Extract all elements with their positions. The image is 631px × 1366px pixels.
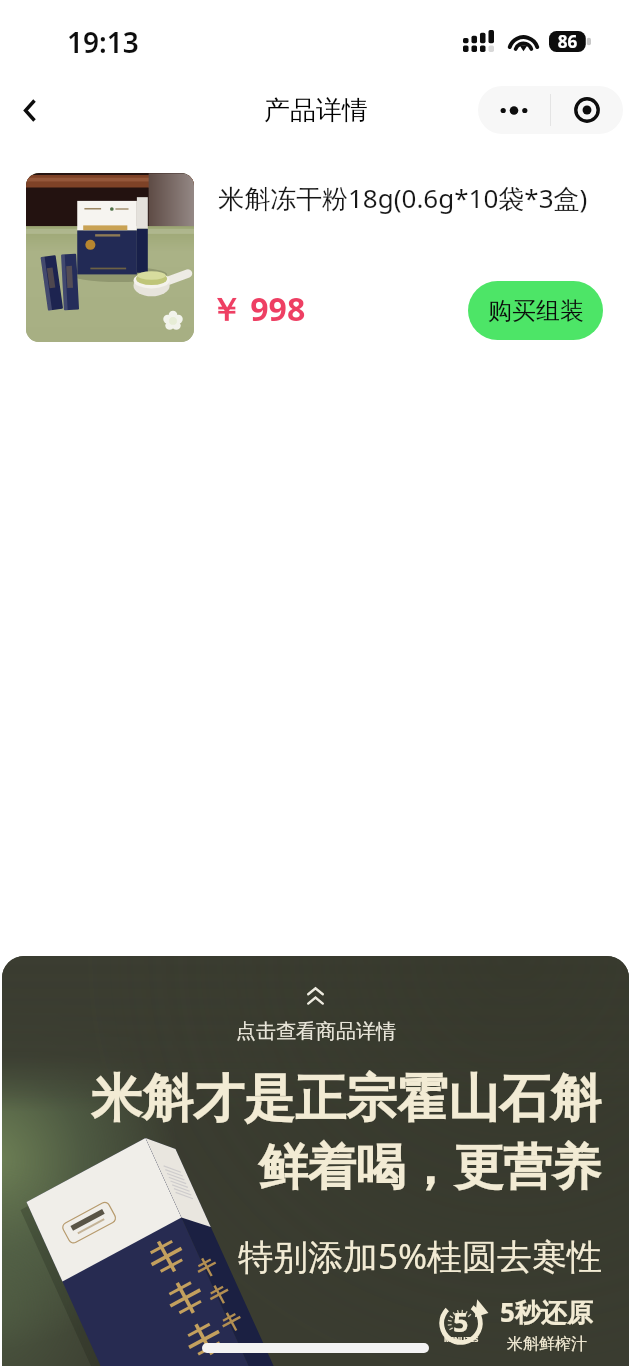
staticText: 5秒还原 xyxy=(500,1294,593,1330)
button[interactable]: 购买组装 xyxy=(468,281,603,340)
staticText: 5 xyxy=(453,1303,469,1340)
staticText: 产品详情 xyxy=(264,94,368,127)
staticText: 点击查看商品详情 xyxy=(236,1019,396,1044)
staticText: ￥ 998 xyxy=(210,287,306,331)
staticText: 购买组装 xyxy=(488,296,584,326)
staticText: 米斛鲜榨汁 xyxy=(507,1334,587,1354)
staticText: 19:13 xyxy=(67,23,139,61)
staticText: MINUTES xyxy=(444,1334,479,1344)
staticText: 米斛才是正宗霍山石斛 xyxy=(91,1067,601,1131)
button[interactable]: Product photo xyxy=(26,173,194,342)
staticText: 鲜着喝，更营养 xyxy=(258,1137,601,1199)
button[interactable]: 点击查看商品详情 xyxy=(2,956,629,1366)
button[interactable]: More options xyxy=(478,86,550,134)
staticText: 特别添加5%桂圆去寒性 xyxy=(238,1232,603,1280)
staticText: 86 xyxy=(549,30,586,51)
button[interactable]: Close mini program xyxy=(551,86,623,134)
button[interactable]: Back xyxy=(0,76,60,144)
staticText: 米斛冻干粉18g(0.6g*10袋*3盒) xyxy=(218,180,588,216)
